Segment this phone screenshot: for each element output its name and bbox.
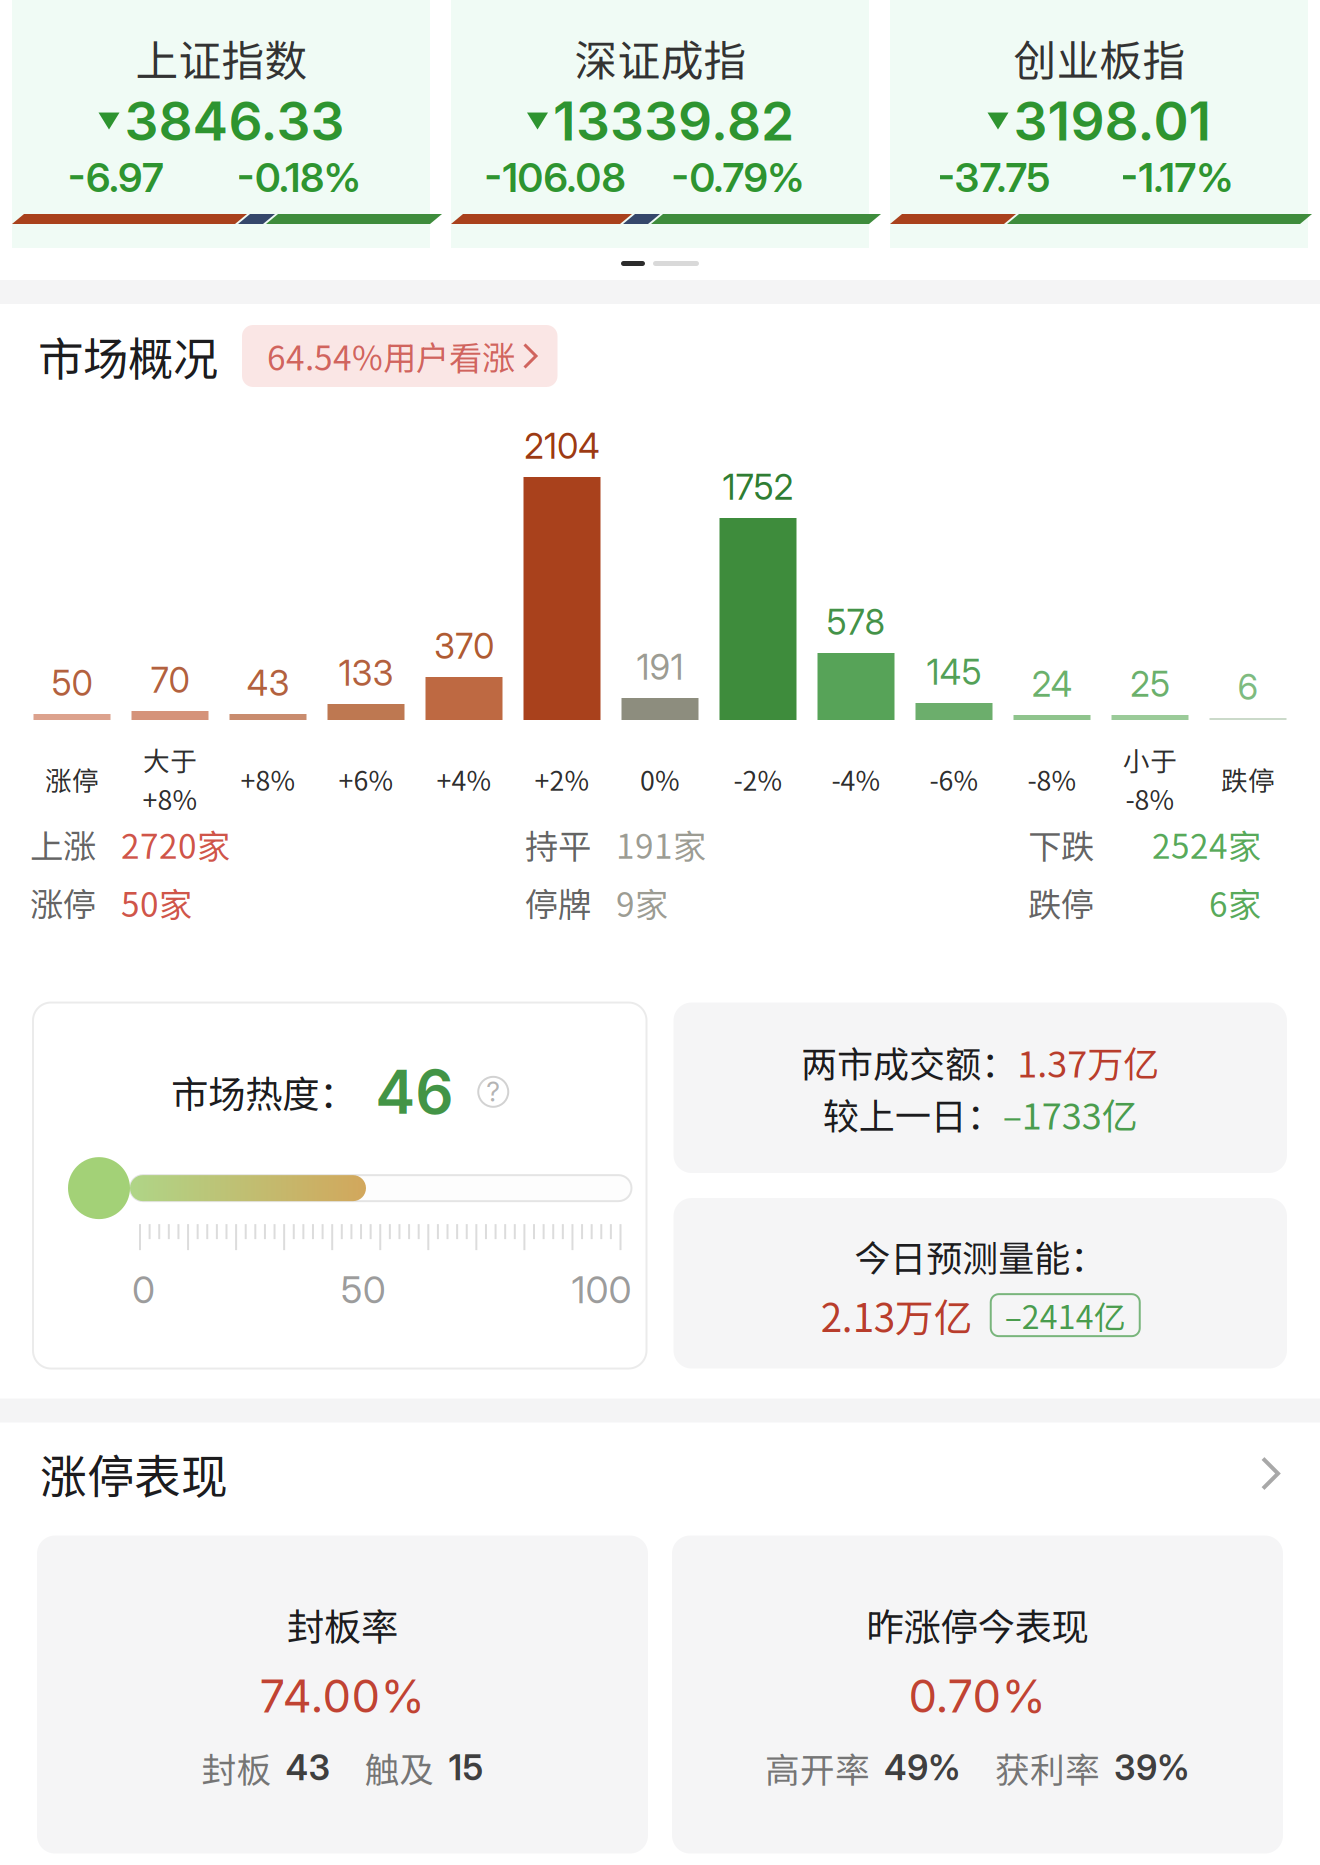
staticText: 50 (51, 662, 92, 704)
staticText: 昨涨停今表现 (866, 1597, 1088, 1652)
staticText: +6% (338, 760, 393, 798)
staticText: -8% (1125, 779, 1174, 818)
staticText: 涨停 (45, 760, 99, 798)
staticText: 今日预测量能： (854, 1230, 1106, 1282)
staticText: 封板率 (287, 1597, 398, 1652)
staticText: -37.75 (937, 153, 1050, 202)
staticText: 2524家 (1152, 820, 1261, 868)
staticText: -6% (929, 760, 978, 798)
staticText: 上证指数 (135, 27, 307, 89)
staticText: 小于 (1123, 740, 1177, 779)
staticText: 创业板指 (1013, 27, 1185, 89)
staticText: –2414亿 (1005, 1292, 1126, 1338)
button[interactable]: 涨停表现 (0, 1422, 1320, 1524)
staticText: 封板 (201, 1742, 271, 1793)
staticText: ? (486, 1076, 500, 1108)
staticText: 46 (375, 1055, 453, 1128)
staticText: 100 (571, 1267, 631, 1312)
staticText: 49% (884, 1747, 961, 1788)
staticText: 停牌 (525, 878, 591, 927)
staticText: 74.00% (259, 1669, 425, 1723)
staticText: 市场概况 (38, 323, 218, 389)
staticText: 2720家 (121, 820, 230, 868)
staticText: 50 (341, 1267, 386, 1312)
staticText: 43 (246, 662, 289, 704)
staticText: 370 (434, 625, 494, 667)
staticText: –1733亿 (1003, 1088, 1138, 1140)
staticText: 跌停 (1028, 878, 1094, 927)
staticText: 6 (1237, 666, 1258, 708)
staticText: 0 (132, 1267, 155, 1312)
staticText: +2% (534, 760, 589, 798)
staticText: 6家 (1209, 878, 1261, 927)
staticText: -1.17% (1120, 153, 1233, 202)
staticText: 高开率 (765, 1742, 870, 1793)
staticText: 2104 (524, 425, 600, 467)
staticText: 9家 (616, 878, 668, 927)
staticText: 获利率 (995, 1742, 1100, 1793)
staticText: 133 (338, 652, 393, 694)
staticText: 跌停 (1221, 760, 1275, 798)
staticText: 较上一日： (823, 1088, 1003, 1140)
staticText: 上涨 (30, 820, 96, 868)
staticText: 下跌 (1028, 820, 1094, 868)
staticText: 0% (640, 760, 680, 798)
staticText: 深证成指 (574, 27, 746, 89)
staticText: 578 (826, 601, 885, 643)
staticText: +8% (240, 760, 295, 798)
staticText: -8% (1027, 760, 1076, 798)
staticText: 持平 (525, 820, 591, 868)
button[interactable]: 创业板指 (890, 0, 1308, 248)
staticText: 大于 (143, 740, 197, 779)
staticText: 70 (150, 659, 189, 701)
button[interactable]: 64.54%用户看涨 (242, 325, 557, 387)
staticText: 43 (285, 1747, 330, 1788)
staticText: 24 (1031, 663, 1072, 705)
staticText: 触及 (364, 1742, 434, 1793)
staticText: 3846.33 (124, 89, 344, 153)
staticText: +4% (436, 760, 491, 798)
staticText: 2.13万亿 (821, 1287, 973, 1343)
staticText: 191家 (616, 820, 706, 868)
staticText: 涨停表现 (40, 1440, 228, 1507)
staticText: 25 (1130, 663, 1170, 705)
staticText: 50家 (121, 878, 192, 927)
staticText: +8% (142, 779, 197, 818)
staticText: -2% (733, 760, 782, 798)
staticText: 0.70% (908, 1669, 1046, 1723)
button[interactable]: 上证指数 (12, 0, 430, 248)
staticText: 13339.82 (553, 89, 794, 153)
staticText: 1.37万亿 (1017, 1036, 1159, 1088)
staticText: -0.18% (237, 153, 361, 202)
staticText: 145 (926, 651, 981, 693)
staticText: 39% (1114, 1747, 1190, 1788)
staticText: 64.54%用户看涨 (267, 332, 515, 380)
staticText: 市场热度： (171, 1065, 356, 1119)
button[interactable]: 深证成指 (451, 0, 869, 248)
staticText: -4% (831, 760, 880, 798)
staticText: 15 (448, 1747, 483, 1788)
staticText: -106.08 (484, 153, 625, 202)
staticText: -0.79% (671, 153, 804, 202)
staticText: 3198.01 (1013, 89, 1211, 153)
staticText: 两市成交额： (801, 1036, 1017, 1088)
staticText: 191 (636, 646, 683, 688)
staticText: 涨停 (30, 878, 96, 927)
staticText: 1752 (722, 466, 793, 508)
staticText: -6.97 (68, 153, 164, 202)
